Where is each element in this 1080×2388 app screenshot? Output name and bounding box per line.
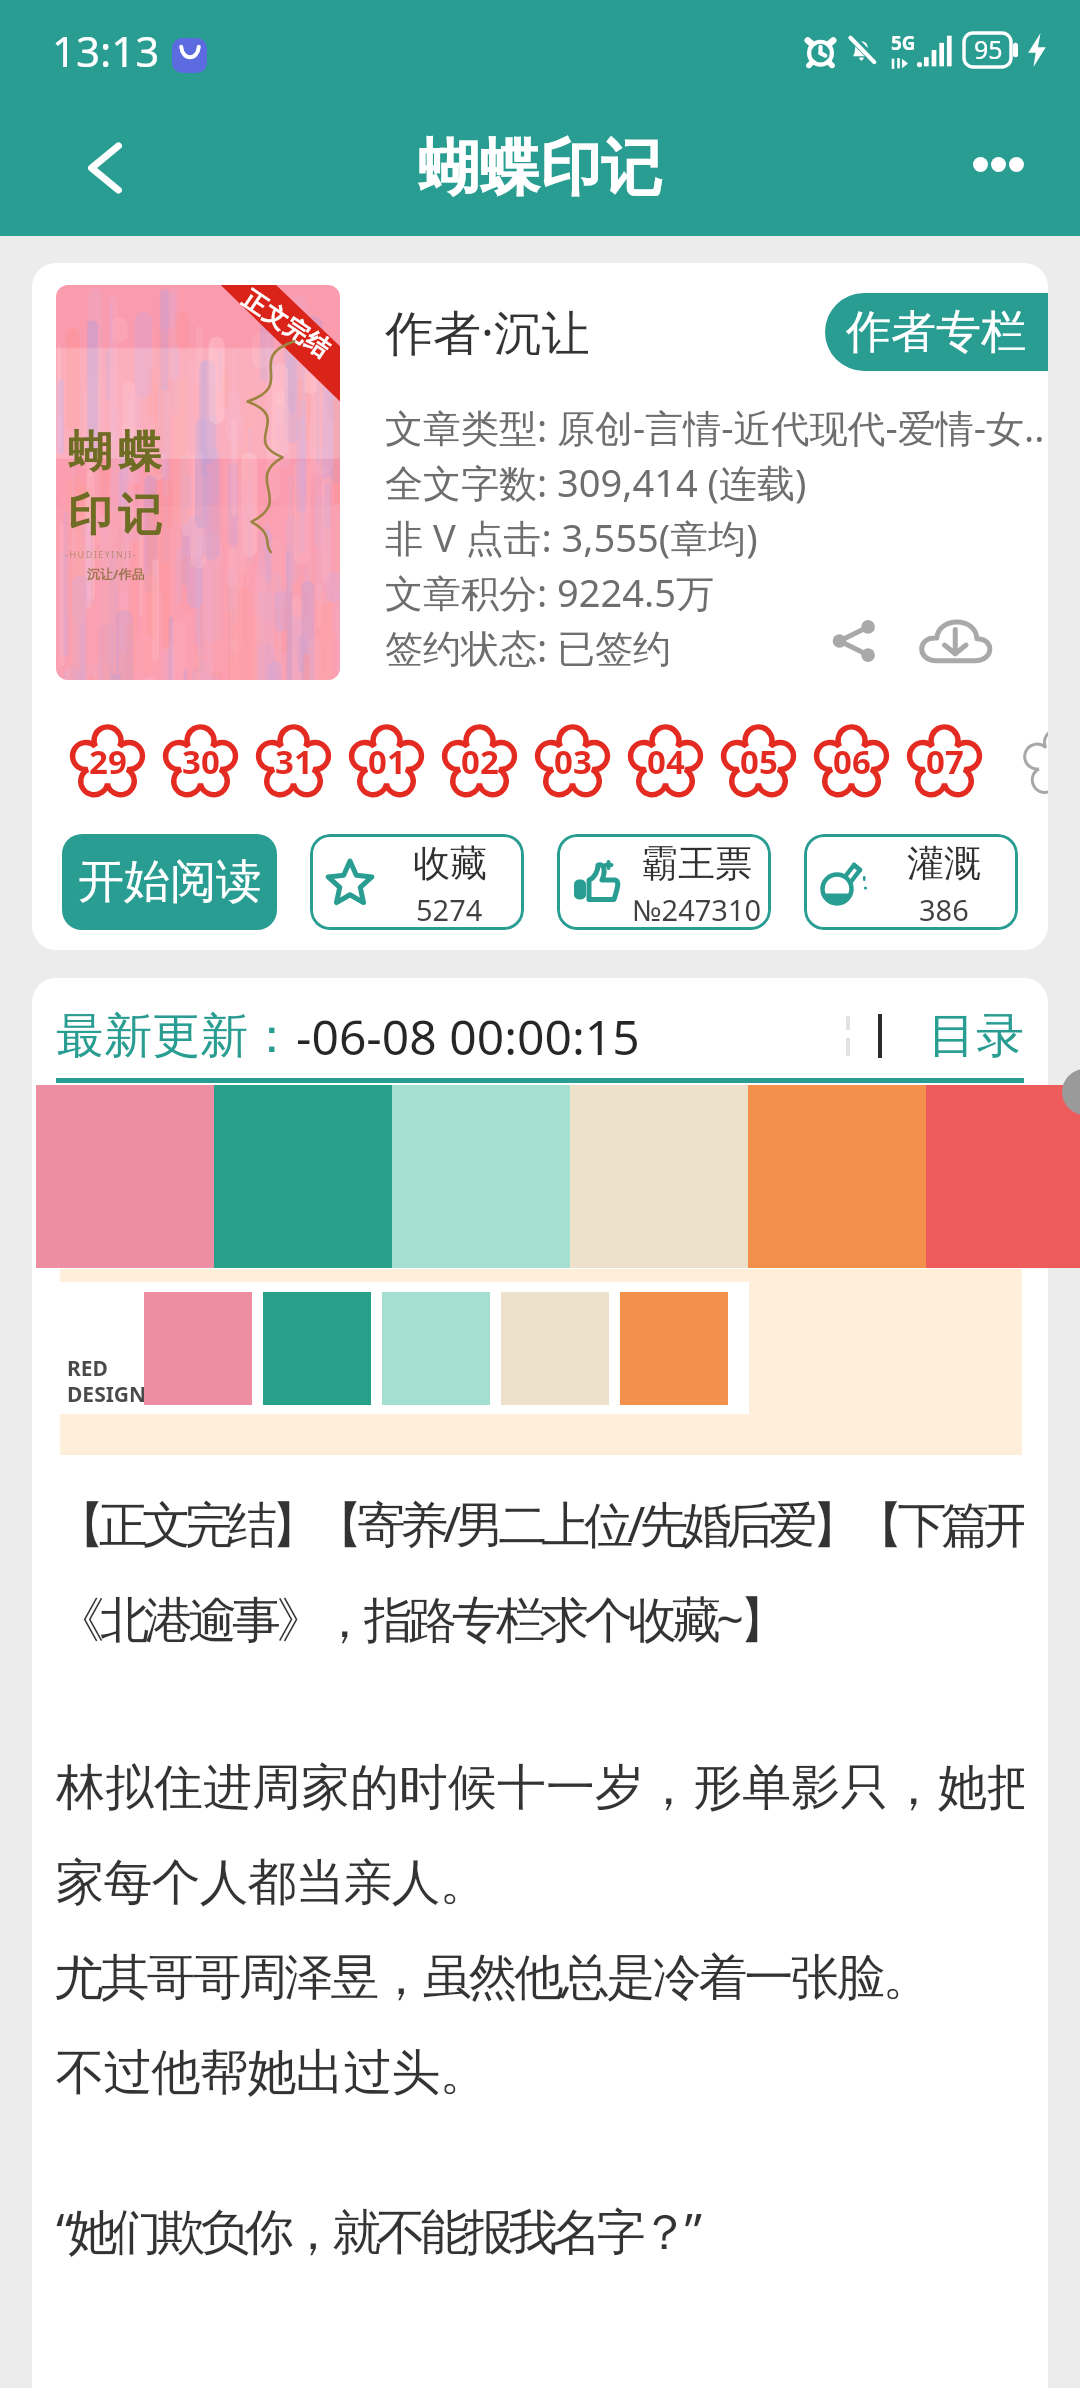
button[interactable]: Update day 30: [154, 716, 247, 810]
button[interactable]: Update day 06: [805, 716, 898, 810]
staticText: 文章类型: 原创-言情-近代现代-爱情-女..: [385, 401, 1045, 453]
staticText: 文章积分: 9224.5万: [385, 566, 714, 618]
staticText: 目录: [928, 1006, 1024, 1066]
staticText: 收藏: [413, 840, 487, 887]
staticText: 【正文完结】【寄养/男二上位/先婚后爱】【下篇开: [56, 1490, 1024, 1557]
staticText: 386: [919, 890, 969, 929]
staticText: 不过他帮她出过头。: [56, 2042, 488, 2104]
button[interactable]: Update day 03: [526, 716, 619, 810]
staticText: 29: [89, 739, 127, 784]
staticText: 灌溉: [907, 840, 981, 887]
staticText: -06-08 00:00:15: [296, 1004, 640, 1069]
staticText: 林拟住进周家的时候十一岁，形单影只，她把周: [56, 1757, 1024, 1819]
staticText: 5G: [891, 30, 916, 56]
button[interactable]: 开始阅读: [62, 834, 277, 930]
staticText: 31: [275, 739, 313, 784]
staticText: 作者·沉让: [385, 299, 590, 365]
button[interactable]: Update day 04: [619, 716, 712, 810]
button[interactable]: 作者专栏: [825, 293, 1048, 371]
staticText: 03: [554, 739, 592, 784]
staticText: 签约状态: 已签约: [385, 621, 672, 673]
staticText: 尤其哥哥周泽昱，虽然他总是冷着一张脸。: [56, 1947, 930, 2009]
button[interactable]: Update day 31: [247, 716, 340, 810]
button[interactable]: Update day 01: [340, 716, 433, 810]
staticText: 全文字数: 309,414 (连载): [385, 456, 807, 508]
staticText: “她们欺负你，就不能报我名字？”: [56, 2197, 698, 2264]
staticText: 95: [974, 32, 1003, 66]
button[interactable]: Update day 05: [712, 716, 805, 810]
staticText: №247310: [632, 890, 762, 929]
staticText: 13:13: [52, 22, 160, 79]
button[interactable]: Back: [57, 120, 153, 216]
staticText: 04: [647, 739, 685, 784]
button[interactable]: 目录: [928, 1006, 1024, 1066]
staticText: 05: [740, 739, 778, 784]
button[interactable]: Share: [820, 607, 888, 675]
button[interactable]: Update day 07: [898, 716, 991, 810]
staticText: -HUDIEYINJI-: [65, 548, 138, 560]
staticText: 30: [182, 739, 220, 784]
staticText: 01: [368, 739, 406, 784]
staticText: 霸王票: [641, 840, 752, 887]
button[interactable]: 灌溉: [804, 834, 1018, 930]
staticText: 沉让/作品: [87, 565, 145, 583]
button[interactable]: Update day 02: [433, 716, 526, 810]
button[interactable]: Download: [910, 597, 998, 685]
staticText: 非 V 点击: 3,555(章均): [385, 511, 758, 563]
button[interactable]: Book cover 蝴蝶印记: [56, 285, 340, 680]
button[interactable]: 收藏: [310, 834, 524, 930]
staticText: 蝴蝶: [65, 425, 165, 480]
staticText: 07: [926, 739, 964, 784]
staticText: 家每个人都当亲人。: [56, 1852, 488, 1914]
staticText: 《北港逾事》，指路专栏求个收藏~】: [56, 1585, 784, 1652]
staticText: 5274: [416, 890, 483, 929]
staticText: RED DESIGN: [67, 1354, 147, 1409]
staticText: 06: [833, 739, 871, 784]
staticText: 开始阅读: [78, 853, 262, 911]
staticText: 正文完结: [236, 285, 336, 364]
button[interactable]: Update day 29: [61, 716, 154, 810]
button[interactable]: 霸王票: [557, 834, 771, 930]
staticText: 最新更新：: [56, 1006, 296, 1066]
staticText: 蝴蝶印记: [418, 130, 662, 207]
staticText: 印记: [65, 488, 165, 543]
button[interactable]: More options: [950, 116, 1046, 212]
staticText: 02: [461, 739, 499, 784]
staticText: 作者专栏: [846, 304, 1026, 361]
